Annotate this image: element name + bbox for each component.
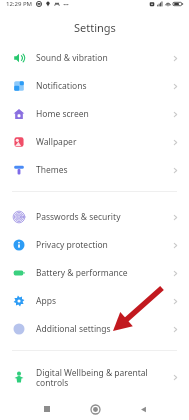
staticText: 12:29 PM xyxy=(6,0,33,8)
button[interactable]: Digital Wellbeing & parental controls xyxy=(0,362,189,392)
button[interactable]: Home xyxy=(71,398,119,420)
staticText: Themes xyxy=(36,164,68,176)
button[interactable]: Back xyxy=(119,398,167,420)
button[interactable]: Privacy protection xyxy=(0,231,189,259)
staticText: Settings xyxy=(74,20,116,35)
button[interactable]: Battery & performance xyxy=(0,259,189,287)
button[interactable]: Themes xyxy=(0,156,189,184)
button[interactable]: Wallpaper xyxy=(0,128,189,156)
staticText: Sound & vibration xyxy=(36,52,108,64)
button[interactable]: Additional settings xyxy=(0,315,189,343)
staticText: Notifications xyxy=(36,80,87,92)
staticText: Privacy protection xyxy=(36,239,108,251)
staticText: Battery & performance xyxy=(36,267,128,279)
staticText: Apps xyxy=(36,295,56,307)
staticText: Wallpaper xyxy=(36,136,77,148)
button[interactable]: Notifications xyxy=(0,72,189,100)
button[interactable]: Apps xyxy=(0,287,189,315)
button[interactable]: Passwords & security xyxy=(0,203,189,231)
staticText: Home screen xyxy=(36,108,89,120)
button[interactable]: Home screen xyxy=(0,100,189,128)
staticText: Passwords & security xyxy=(36,211,121,223)
staticText: Digital Wellbeing & parental controls xyxy=(36,367,148,388)
button[interactable]: Recents xyxy=(23,398,71,420)
button[interactable]: Sound & vibration xyxy=(0,44,189,72)
staticText: Additional settings xyxy=(36,323,111,335)
